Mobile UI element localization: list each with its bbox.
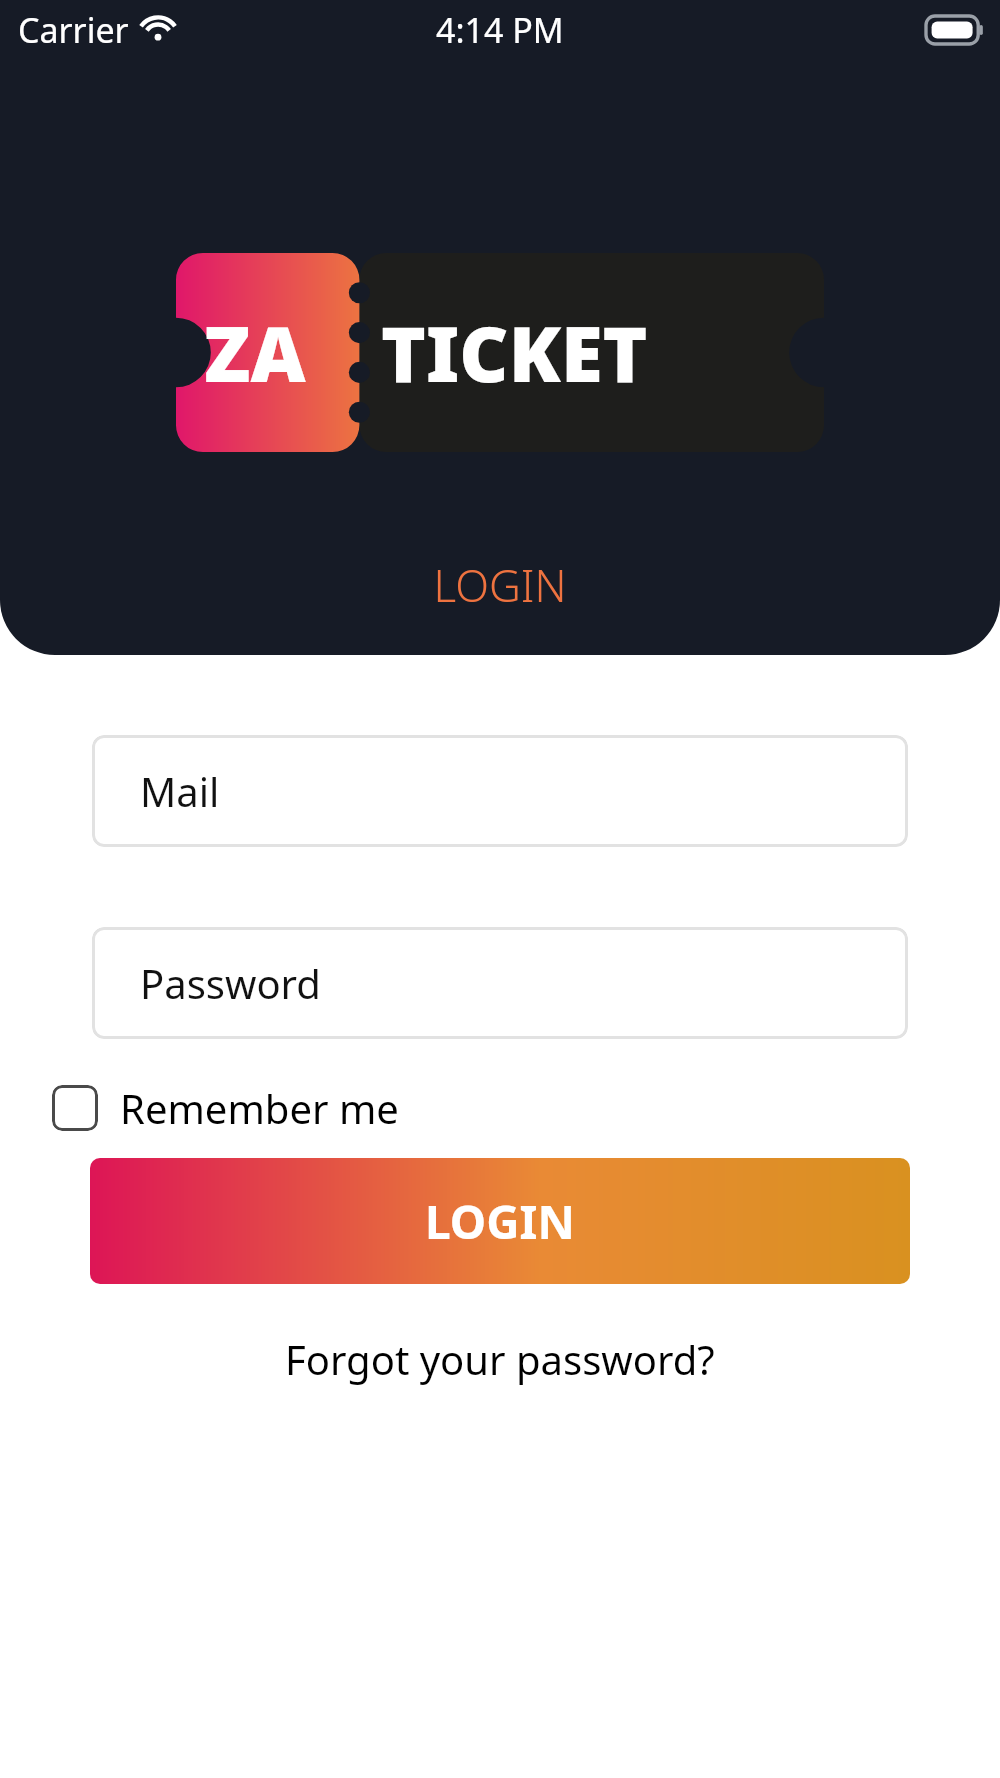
button[interactable]: LOGIN: [90, 1158, 910, 1284]
button[interactable]: Mail: [92, 735, 908, 847]
button[interactable]: Remember me: [52, 1077, 415, 1139]
staticText: LOGIN: [433, 555, 567, 615]
staticText: Remember me: [120, 1081, 399, 1135]
staticText: TICKET: [381, 301, 648, 405]
button[interactable]: Forgot your password?: [273, 1326, 727, 1392]
button[interactable]: Password: [92, 927, 908, 1039]
staticText: Carrier: [18, 7, 129, 53]
staticText: 4:14 PM: [436, 7, 564, 53]
staticText: ZA: [204, 301, 306, 405]
staticText: Mail: [140, 764, 220, 818]
staticText: Password: [140, 956, 321, 1010]
staticText: LOGIN: [425, 1190, 575, 1253]
